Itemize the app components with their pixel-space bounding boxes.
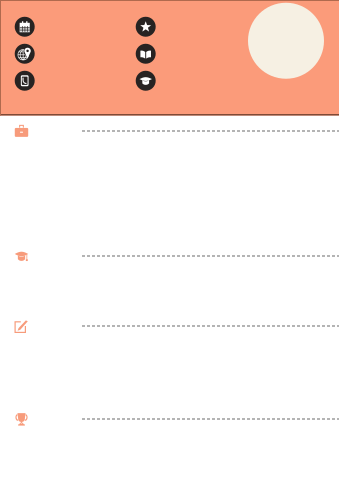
button[interactable]: Favorites [136,17,156,37]
button[interactable] [0,248,339,264]
button[interactable]: Education [136,71,156,91]
button[interactable]: Calendar [15,17,35,37]
button[interactable]: Contact [15,71,35,91]
button[interactable] [0,318,339,334]
button[interactable] [0,123,339,139]
button[interactable]: Library [136,44,156,64]
button[interactable] [0,411,339,427]
button[interactable]: Locations [15,44,35,64]
